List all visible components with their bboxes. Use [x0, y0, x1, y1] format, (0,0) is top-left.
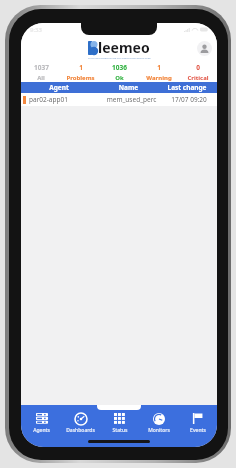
button[interactable]: 1036: [100, 60, 139, 82]
button[interactable]: Monitors: [139, 412, 178, 447]
button[interactable]: Events: [178, 412, 217, 447]
button[interactable]: 1: [61, 60, 100, 82]
button[interactable]: Dashboards: [61, 412, 100, 447]
staticText: Status: [112, 427, 128, 434]
staticText: Events: [190, 427, 206, 434]
button[interactable]: Status: [100, 412, 139, 447]
button[interactable]: Agents: [21, 412, 61, 447]
staticText: All: [37, 74, 45, 82]
staticText: Name: [97, 83, 160, 92]
staticText: Last change: [160, 83, 214, 92]
staticText: SAAS MONITORING FOR SCALABLE INFRASTRUCT…: [88, 56, 151, 59]
button[interactable]: Account: [197, 41, 212, 56]
button[interactable]: 1037: [21, 60, 61, 82]
staticText: 1037: [34, 63, 49, 72]
staticText: Agents: [33, 427, 50, 434]
staticText: Monitors: [148, 427, 170, 434]
staticText: Critical: [187, 74, 209, 82]
staticText: Agent: [21, 83, 97, 92]
button[interactable]: 1: [139, 60, 178, 82]
staticText: Warning: [146, 74, 172, 82]
staticText: 1036: [112, 63, 127, 72]
staticText: 1: [79, 63, 83, 72]
staticText: mem_used_perc: [100, 95, 163, 104]
staticText: leemeo: [98, 38, 150, 57]
button[interactable]: 0: [178, 60, 217, 82]
staticText: 17/07 09:20: [163, 95, 215, 104]
staticText: 1: [157, 63, 161, 72]
staticText: 0: [196, 63, 200, 72]
staticText: 9:33: [30, 26, 42, 34]
button[interactable]: par02-app01: [21, 93, 217, 106]
staticText: Problems: [66, 74, 95, 82]
staticText: Dashboards: [66, 427, 95, 434]
staticText: Ok: [115, 74, 124, 82]
staticText: par02-app01: [29, 95, 100, 104]
